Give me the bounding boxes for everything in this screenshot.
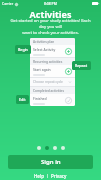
staticText: 8:08 PM	[44, 1, 57, 6]
button[interactable]: Begin	[15, 45, 31, 54]
button[interactable]: Help	[31, 172, 47, 180]
staticText: Choose repeat cycle	[33, 80, 68, 84]
staticText: Repeat	[75, 63, 88, 68]
other: Completed	[65, 97, 72, 104]
button[interactable]	[37, 146, 41, 150]
button[interactable]	[45, 146, 49, 150]
button[interactable]: Privacy	[48, 172, 70, 180]
staticText: Begin	[18, 47, 28, 52]
staticText: Activities plan	[33, 40, 55, 44]
button[interactable]: Repeat	[72, 61, 91, 70]
other: Expand	[68, 80, 72, 84]
staticText: Get started on your study activities! Ea…	[9, 18, 92, 36]
staticText: Finished	[33, 96, 47, 101]
other: Add activity	[65, 68, 72, 75]
staticText: Completed activities	[33, 89, 64, 93]
staticText: Privacy	[51, 173, 67, 179]
staticText: Edit	[19, 97, 26, 102]
button[interactable]: Edit	[16, 95, 29, 104]
staticText: Start again	[33, 67, 51, 72]
button[interactable]: Start again	[30, 65, 75, 77]
button[interactable]	[61, 146, 65, 150]
staticText: Select Activity	[33, 47, 56, 52]
button[interactable]: Finished	[30, 94, 75, 106]
button[interactable]: Sign in	[8, 155, 93, 169]
other: Add activity	[65, 48, 72, 55]
button[interactable]: Select Activity	[30, 45, 75, 57]
staticText: Carrier	[2, 1, 14, 6]
staticText: Help	[34, 173, 44, 179]
staticText: Activities	[0, 8, 101, 20]
staticText: Sign in	[41, 158, 61, 166]
staticText: Recurring activities	[33, 60, 63, 64]
button[interactable]	[53, 146, 57, 150]
button[interactable]: Choose repeat cycle	[30, 78, 75, 86]
